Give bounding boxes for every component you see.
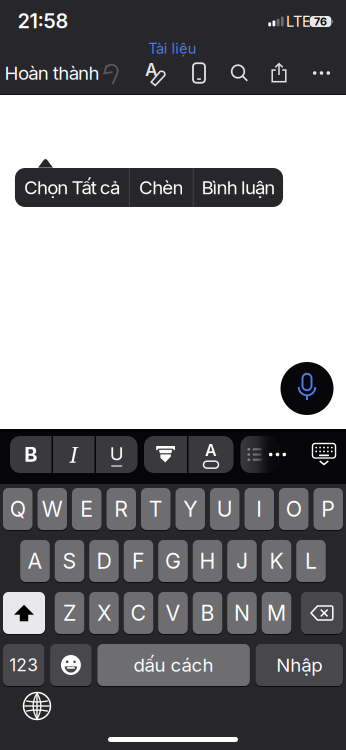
staticText: U xyxy=(217,496,233,522)
button[interactable]: O xyxy=(279,488,308,530)
button[interactable]: C xyxy=(124,592,153,634)
button[interactable]: Y xyxy=(175,488,205,530)
staticText: M xyxy=(267,600,286,626)
staticText: O xyxy=(286,496,302,522)
button[interactable]: D xyxy=(89,540,119,582)
button[interactable]: F xyxy=(124,540,153,582)
button[interactable]: U xyxy=(210,488,239,530)
button[interactable]: 123 xyxy=(3,644,44,686)
staticText: 123 xyxy=(9,655,38,675)
button[interactable]: Shift xyxy=(3,592,45,634)
staticText: 21:58 xyxy=(17,9,68,33)
staticText: LTE xyxy=(286,13,311,30)
staticText: G xyxy=(165,548,181,574)
button[interactable]: Next keyboard xyxy=(17,686,57,726)
staticText: J xyxy=(236,548,248,574)
staticText: E xyxy=(80,496,93,522)
button[interactable]: V xyxy=(158,592,188,634)
staticText: R xyxy=(114,496,128,522)
staticText: I xyxy=(70,440,78,469)
staticText: Hoàn thành xyxy=(4,62,100,84)
staticText: W xyxy=(42,496,63,522)
staticText: X xyxy=(97,600,111,626)
staticText: H xyxy=(199,548,215,574)
button[interactable]: More xyxy=(300,53,342,93)
button[interactable]: T xyxy=(141,488,170,530)
button[interactable]: G xyxy=(158,540,188,582)
button[interactable]: Dictate xyxy=(280,362,333,415)
staticText: T xyxy=(149,496,163,522)
button[interactable]: Bình luận xyxy=(194,168,283,207)
button[interactable]: Hoàn thành xyxy=(4,62,100,84)
button[interactable]: Nhập xyxy=(255,644,343,686)
button[interactable]: Bullets xyxy=(240,436,278,473)
button[interactable]: Chèn xyxy=(130,168,193,207)
button[interactable]: I xyxy=(244,488,274,530)
button[interactable]: Bold xyxy=(10,436,51,473)
staticText: Q xyxy=(10,496,26,522)
button[interactable]: P xyxy=(313,488,343,530)
button[interactable]: Mobile View xyxy=(178,53,220,93)
button[interactable]: dấu cách xyxy=(97,644,250,686)
staticText: A xyxy=(145,59,158,80)
button[interactable]: J xyxy=(227,540,257,582)
button[interactable]: L xyxy=(296,540,326,582)
button[interactable]: Share xyxy=(258,53,300,93)
staticText: L xyxy=(305,548,317,574)
button[interactable]: K xyxy=(262,540,291,582)
staticText: Bình luận xyxy=(201,176,275,198)
staticText: F xyxy=(132,548,145,574)
button[interactable]: Find xyxy=(218,53,260,93)
button[interactable]: B xyxy=(193,592,222,634)
staticText: I xyxy=(256,496,262,522)
button[interactable]: More formatting xyxy=(258,436,296,473)
button[interactable]: Emoji xyxy=(50,644,92,686)
staticText: A xyxy=(205,441,217,460)
staticText: dấu cách xyxy=(134,654,214,676)
button[interactable]: Undo xyxy=(89,53,131,93)
button[interactable]: Q xyxy=(3,488,32,530)
staticText: S xyxy=(62,548,76,574)
button[interactable]: W xyxy=(37,488,67,530)
button[interactable]: X xyxy=(89,592,119,634)
staticText: D xyxy=(96,548,111,574)
staticText: Z xyxy=(63,600,76,626)
staticText: Chèn xyxy=(139,176,183,198)
button[interactable]: R xyxy=(106,488,136,530)
staticText: K xyxy=(269,548,283,574)
button[interactable]: Chọn Tất cả xyxy=(15,168,129,207)
staticText: 76 xyxy=(314,15,327,28)
button[interactable]: Delete xyxy=(301,592,343,634)
button[interactable]: N xyxy=(227,592,257,634)
button[interactable]: Format xyxy=(134,53,176,93)
staticText: U xyxy=(110,442,124,464)
staticText: A xyxy=(27,548,42,574)
staticText: B xyxy=(24,443,37,466)
staticText: Chọn Tất cả xyxy=(24,176,120,198)
staticText: C xyxy=(130,600,146,626)
button[interactable]: A xyxy=(20,540,50,582)
button[interactable]: Z xyxy=(55,592,84,634)
button[interactable]: H xyxy=(193,540,222,582)
button[interactable]: M xyxy=(262,592,291,634)
staticText: N xyxy=(234,600,250,626)
staticText: V xyxy=(165,600,180,626)
button[interactable]: S xyxy=(55,540,84,582)
button[interactable]: Font Colour xyxy=(188,436,233,473)
button[interactable]: Hide Keyboard xyxy=(302,436,346,473)
button[interactable]: Underline xyxy=(96,436,137,473)
staticText: P xyxy=(321,496,335,522)
button[interactable]: Highlight xyxy=(144,436,187,473)
button[interactable]: E xyxy=(72,488,101,530)
staticText: Tài liệu xyxy=(148,40,197,57)
button[interactable]: Italic xyxy=(53,436,94,473)
staticText: Y xyxy=(183,496,197,522)
staticText: B xyxy=(200,600,214,626)
staticText: Nhập xyxy=(276,654,322,676)
